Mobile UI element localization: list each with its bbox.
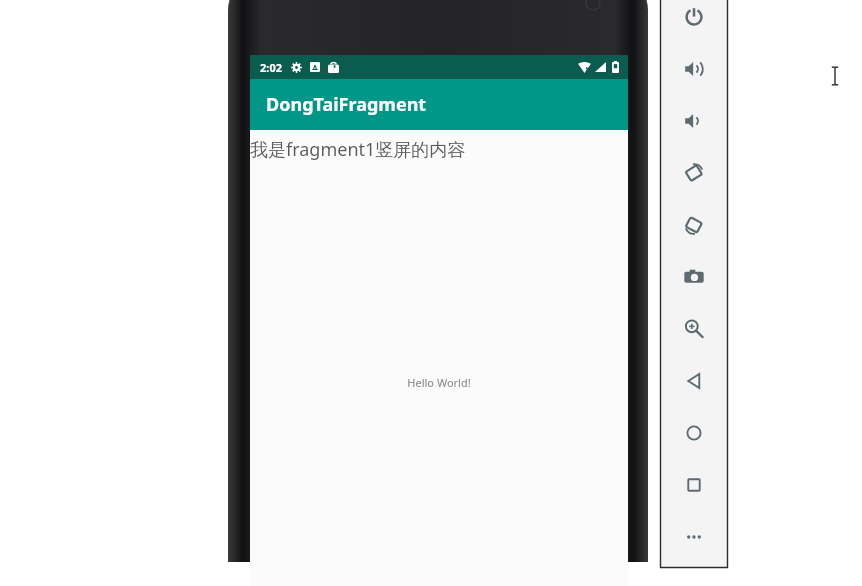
staticText: DongTaiFragment xyxy=(266,92,427,117)
button[interactable]: Volume up xyxy=(672,58,716,80)
button[interactable]: DongTaiFragment xyxy=(250,79,628,130)
button[interactable]: Overview xyxy=(672,474,716,496)
staticText: Hello World! xyxy=(250,375,628,390)
button[interactable]: Back xyxy=(672,370,716,392)
button[interactable]: More xyxy=(672,526,716,548)
button[interactable]: Rotate right xyxy=(672,214,716,236)
staticText: 我是fragment1竖屏的内容 xyxy=(250,137,466,162)
button[interactable]: Zoom xyxy=(672,318,716,340)
button[interactable]: Power xyxy=(672,6,716,28)
button[interactable]: Screenshot xyxy=(672,266,716,288)
button[interactable]: Volume down xyxy=(672,110,716,132)
button[interactable]: Rotate left xyxy=(672,162,716,184)
staticText: 2:02 xyxy=(260,60,282,75)
button[interactable]: Home xyxy=(672,422,716,444)
